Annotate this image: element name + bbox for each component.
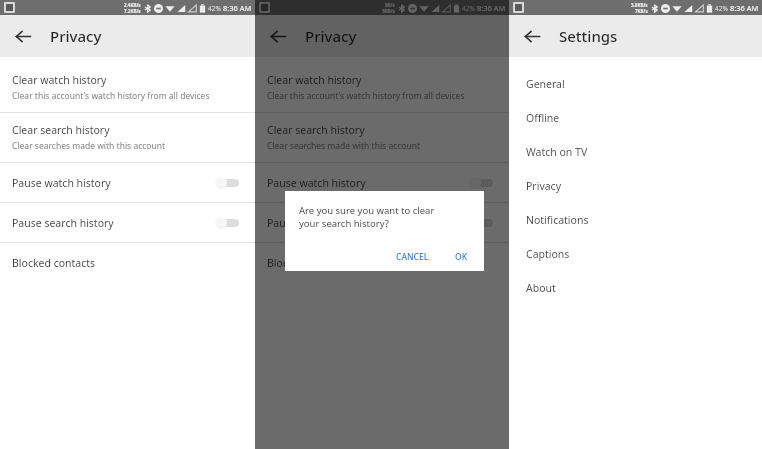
staticText: Privacy xyxy=(50,26,102,46)
button[interactable]: Offline xyxy=(509,101,762,135)
staticText: 7KB/s xyxy=(635,8,648,14)
staticText: 3KB/s xyxy=(382,8,395,14)
staticText: Clear this account's watch history from … xyxy=(267,90,465,102)
staticText: Clear this account's watch history from … xyxy=(12,90,210,102)
staticText: Clear watch history xyxy=(267,73,362,87)
staticText: Privacy xyxy=(305,26,357,46)
staticText: Clear searches made with this account xyxy=(267,140,421,152)
staticText: Pause search history xyxy=(267,216,467,230)
button[interactable]: OK xyxy=(449,247,474,267)
staticText: Privacy xyxy=(526,179,562,193)
button[interactable]: Pause watch history xyxy=(0,163,255,202)
staticText: Blocked contacts xyxy=(267,256,351,270)
button[interactable]: Back xyxy=(8,21,38,51)
button[interactable]: Watch on TV xyxy=(509,135,762,169)
button[interactable]: Pause watch history xyxy=(255,163,509,202)
staticText: CANCEL xyxy=(396,251,429,263)
button[interactable]: Clear search history xyxy=(255,113,509,162)
button[interactable]: Back xyxy=(263,21,293,51)
staticText: OK xyxy=(455,251,468,263)
staticText: 8:36 AM xyxy=(730,3,759,13)
staticText: General xyxy=(526,77,565,91)
button[interactable]: Clear watch history xyxy=(0,63,255,112)
button[interactable]: Pause search history xyxy=(255,203,509,242)
button[interactable]: General xyxy=(509,67,762,101)
staticText: Offline xyxy=(526,111,560,125)
button[interactable]: Back xyxy=(517,21,547,51)
staticText: Watch on TV xyxy=(526,145,588,159)
staticText: 8:36 AM xyxy=(223,3,252,13)
staticText: 2.4KB/s xyxy=(124,2,141,8)
staticText: Pause watch history xyxy=(267,176,467,190)
staticText: Clear search history xyxy=(12,123,110,137)
button[interactable]: Clear search history xyxy=(0,113,255,162)
button[interactable]: About xyxy=(509,271,762,305)
staticText: Blocked contacts xyxy=(12,256,96,270)
staticText: 0B/s xyxy=(385,2,395,8)
staticText: 42% xyxy=(715,4,728,13)
staticText: 42% xyxy=(462,4,475,13)
staticText: Clear searches made with this account xyxy=(12,140,166,152)
staticText: Notifications xyxy=(526,213,589,227)
staticText: Clear search history xyxy=(267,123,365,137)
button[interactable]: CANCEL xyxy=(390,247,435,267)
button[interactable]: Clear watch history xyxy=(255,63,509,112)
staticText: Are you sure you want to clear your sear… xyxy=(299,204,435,230)
staticText: Captions xyxy=(526,247,570,261)
button[interactable]: Privacy xyxy=(509,169,762,203)
staticText: Clear watch history xyxy=(12,73,107,87)
staticText: 7.2KB/s xyxy=(124,8,141,14)
button[interactable]: Notifications xyxy=(509,203,762,237)
staticText: 3.8KB/s xyxy=(631,2,648,8)
button[interactable]: Pause search history xyxy=(0,203,255,242)
staticText: Settings xyxy=(559,26,618,46)
staticText: 42% xyxy=(208,4,221,13)
button[interactable]: Blocked contacts xyxy=(0,243,255,282)
button[interactable]: Captions xyxy=(509,237,762,271)
button[interactable]: Blocked contacts xyxy=(255,243,509,282)
staticText: Pause search history xyxy=(12,216,213,230)
staticText: 8:36 AM xyxy=(477,3,506,13)
staticText: About xyxy=(526,281,556,295)
staticText: Pause watch history xyxy=(12,176,213,190)
